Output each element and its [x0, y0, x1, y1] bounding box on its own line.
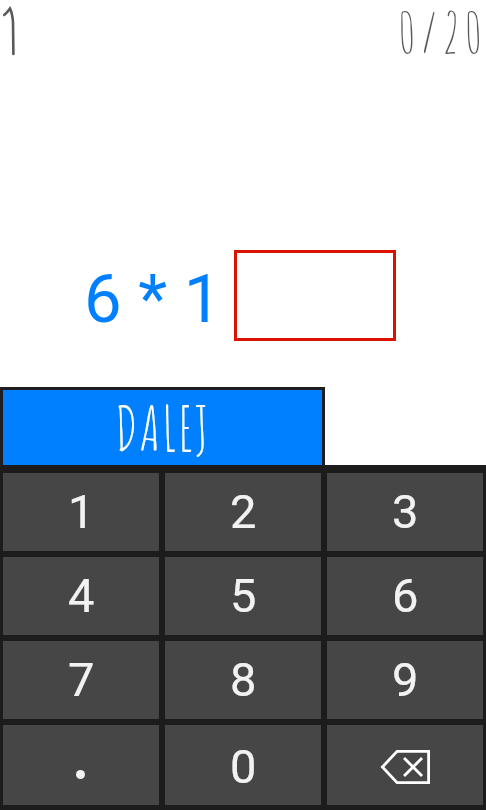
button[interactable]: 0	[165, 725, 321, 805]
staticText: 7	[68, 652, 95, 707]
button[interactable]: 3	[327, 473, 483, 551]
button[interactable]: 9	[327, 641, 483, 719]
other: Question number 1	[3, 7, 19, 57]
staticText: DALEJ	[115, 390, 211, 465]
button[interactable]: 2	[165, 473, 321, 551]
button[interactable]: Decimal point	[3, 725, 159, 805]
staticText: 4	[68, 568, 95, 623]
staticText: 6	[392, 568, 419, 623]
button[interactable]: 6	[327, 557, 483, 635]
button[interactable]: DALEJ	[3, 390, 322, 465]
button[interactable]: Backspace	[327, 725, 483, 805]
staticText: 0	[230, 739, 257, 794]
staticText: 2	[230, 484, 257, 539]
staticText: 0/20	[398, 0, 486, 66]
staticText: 5	[230, 568, 257, 623]
button[interactable]: 7	[3, 641, 159, 719]
button[interactable]: 1	[3, 473, 159, 551]
staticText: 6 * 1	[84, 260, 222, 339]
button[interactable]: 8	[165, 641, 321, 719]
other: Decimal point	[76, 770, 85, 779]
staticText: 9	[392, 652, 419, 707]
staticText: 1	[68, 484, 95, 539]
staticText: 3	[392, 484, 419, 539]
button[interactable]: 5	[165, 557, 321, 635]
staticText: 8	[230, 652, 257, 707]
button[interactable]: 4	[3, 557, 159, 635]
button[interactable]	[234, 250, 396, 341]
